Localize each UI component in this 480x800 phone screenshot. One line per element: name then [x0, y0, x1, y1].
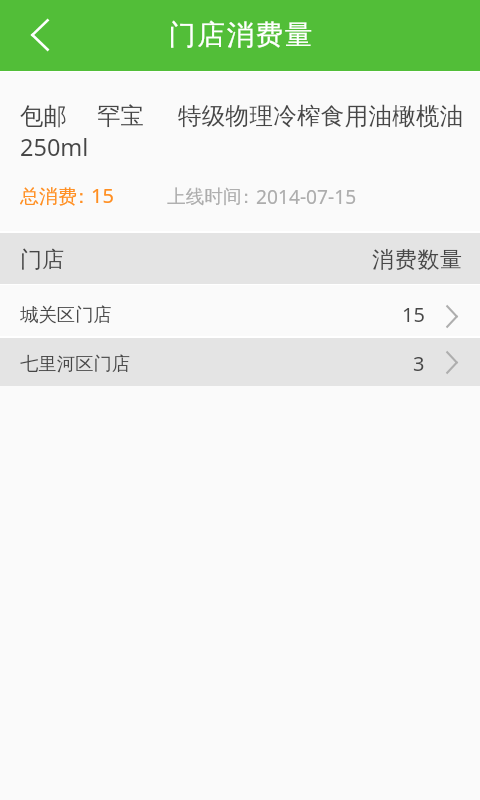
staticText: 3 — [413, 350, 425, 377]
staticText: 15 — [402, 301, 425, 328]
staticText: 消费数量 — [372, 246, 463, 274]
button[interactable]: Back — [0, 0, 78, 71]
staticText: 七里河区门店 — [20, 352, 131, 375]
staticText: ： — [237, 185, 256, 208]
button[interactable]: 城关区门店 — [0, 285, 480, 336]
staticText: 2014-07-15 — [256, 183, 357, 209]
button[interactable]: 七里河区门店 — [0, 338, 480, 386]
staticText: ： — [72, 185, 91, 209]
staticText: 门店 — [20, 246, 64, 274]
staticText: 250ml — [20, 131, 89, 163]
staticText: 总消费 — [20, 185, 77, 209]
staticText: 罕宝 — [97, 101, 144, 131]
staticText: 特级物理冷榨食用油橄榄油 — [178, 101, 464, 131]
staticText: 城关区门店 — [20, 303, 112, 326]
staticText: 上线时间 — [167, 185, 242, 208]
staticText: 15 — [91, 182, 114, 209]
staticText: 包邮 — [20, 101, 67, 131]
staticText: 门店消费量 — [168, 18, 314, 53]
